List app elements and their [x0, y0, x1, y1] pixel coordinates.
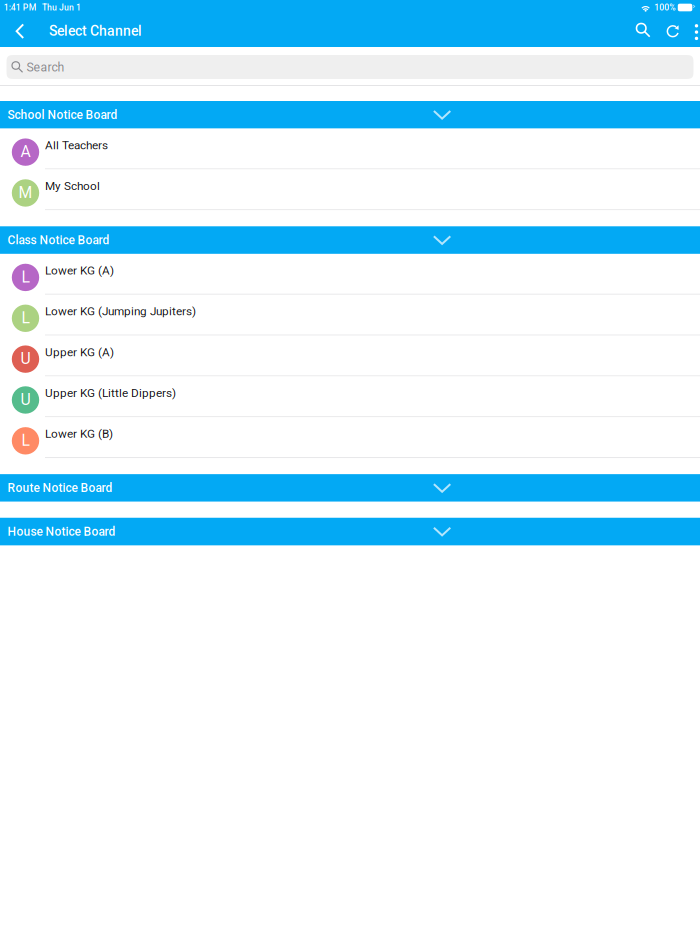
button[interactable]: Search	[6, 55, 693, 79]
staticText: L	[21, 431, 29, 450]
staticText: Search	[26, 60, 64, 75]
staticText: U	[20, 390, 30, 409]
staticText: 100%	[654, 2, 675, 13]
staticText: Lower KG (A)	[45, 264, 114, 277]
button[interactable]: School Notice Board	[0, 101, 700, 129]
staticText: House Notice Board	[7, 524, 115, 539]
staticText: Thu Jun 1	[42, 2, 81, 13]
staticText: Select Channel	[49, 23, 142, 39]
staticText: Upper KG (A)	[45, 345, 114, 359]
button[interactable]: Refresh	[655, 15, 683, 47]
staticText: School Notice Board	[7, 108, 117, 122]
button[interactable]: U	[0, 376, 700, 417]
staticText: M	[18, 183, 32, 202]
staticText: Route Notice Board	[7, 481, 112, 495]
button[interactable]: L	[0, 295, 700, 336]
button[interactable]: L	[0, 417, 700, 458]
button[interactable]: A	[0, 129, 700, 169]
button[interactable]: Search	[627, 15, 655, 47]
staticText: U	[20, 349, 30, 368]
staticText: A	[20, 142, 30, 161]
button[interactable]: U	[0, 336, 700, 376]
button[interactable]: Class Notice Board	[0, 226, 700, 254]
button[interactable]: House Notice Board	[0, 518, 700, 545]
button[interactable]: L	[0, 254, 700, 295]
button[interactable]: M	[0, 169, 700, 210]
staticText: 1:41 PM	[4, 2, 37, 13]
button[interactable]: Route Notice Board	[0, 474, 700, 502]
button[interactable]: More options	[683, 15, 700, 47]
button[interactable]: Back	[0, 15, 38, 47]
staticText: Lower KG (B)	[45, 427, 113, 441]
staticText: Class Notice Board	[7, 233, 109, 247]
staticText: L	[21, 309, 29, 327]
staticText: L	[21, 268, 29, 286]
staticText: All Teachers	[45, 138, 108, 152]
staticText: Upper KG (Little Dippers)	[45, 386, 176, 400]
staticText: Lower KG (Jumping Jupiters)	[45, 304, 196, 318]
staticText: My School	[45, 179, 100, 193]
